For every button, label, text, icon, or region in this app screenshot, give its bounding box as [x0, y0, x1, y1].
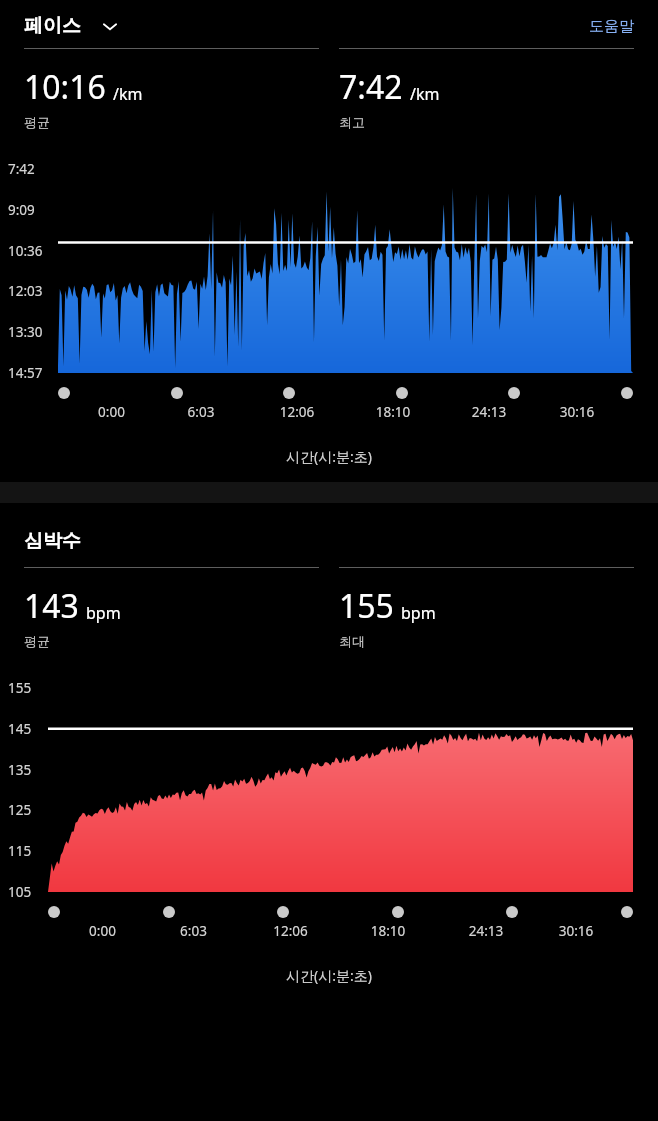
staticText: 12:03: [8, 282, 43, 300]
other: Change metric: [99, 15, 121, 37]
staticText: 12:06: [242, 922, 339, 940]
staticText: 7:42: [339, 65, 403, 109]
staticText: 최고: [339, 114, 365, 130]
staticText: 12:06: [249, 403, 345, 421]
staticText: 7:42: [8, 160, 35, 178]
button[interactable]: 155: [339, 567, 634, 649]
staticText: 125: [8, 801, 32, 819]
staticText: 18:10: [339, 922, 437, 940]
staticText: 24:13: [437, 922, 535, 940]
button[interactable]: 도움말: [589, 17, 634, 36]
staticText: /km: [410, 83, 440, 105]
staticText: 10:16: [24, 65, 106, 109]
staticText: 30:16: [529, 403, 625, 421]
staticText: bpm: [401, 602, 436, 624]
staticText: 155: [8, 679, 32, 697]
staticText: 평균: [24, 114, 50, 130]
staticText: 145: [8, 720, 32, 738]
staticText: 155: [339, 584, 394, 628]
staticText: 도움말: [589, 17, 634, 36]
button[interactable]: 7:42: [339, 48, 634, 130]
staticText: 9:09: [8, 201, 35, 219]
staticText: 115: [8, 842, 32, 860]
staticText: 10:36: [8, 242, 43, 260]
staticText: 6:03: [145, 922, 242, 940]
staticText: 105: [8, 883, 32, 901]
button[interactable]: 페이스: [24, 14, 121, 38]
staticText: 14:57: [8, 364, 43, 382]
button[interactable]: 10:16: [24, 48, 319, 130]
button[interactable]: 심박수: [24, 529, 81, 553]
staticText: 평균: [24, 633, 50, 649]
staticText: 최대: [339, 633, 365, 649]
staticText: 0:00: [54, 922, 151, 940]
staticText: 0:00: [64, 403, 159, 421]
staticText: bpm: [86, 602, 121, 624]
staticText: 135: [8, 761, 32, 779]
staticText: 페이스: [24, 14, 81, 38]
staticText: /km: [113, 83, 143, 105]
staticText: 143: [24, 584, 79, 628]
staticText: 6:03: [153, 403, 249, 421]
staticText: 30:16: [527, 922, 625, 940]
button[interactable]: 143: [24, 567, 319, 649]
staticText: 24:13: [441, 403, 537, 421]
staticText: 18:10: [345, 403, 441, 421]
staticText: 심박수: [24, 529, 81, 553]
staticText: 시간(시:분:초): [0, 966, 658, 985]
staticText: 시간(시:분:초): [0, 447, 658, 466]
staticText: 13:30: [8, 323, 43, 341]
